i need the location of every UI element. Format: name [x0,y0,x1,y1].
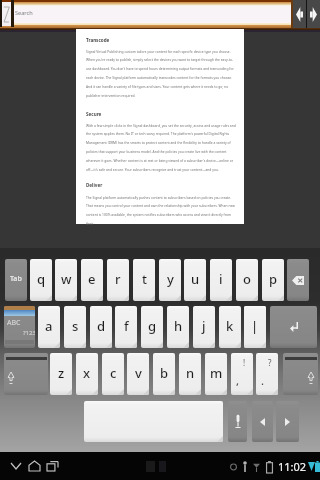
button[interactable]: j [193,306,215,348]
button[interactable]: Home [24,455,44,477]
button[interactable]: Forward [307,0,320,28]
staticText: a [45,317,53,335]
staticText: k [226,317,234,335]
button[interactable]: Hide keyboard [6,455,26,477]
staticText: d [97,317,106,335]
button[interactable]: o [236,259,258,301]
button[interactable]: r [107,259,129,301]
button[interactable] [283,353,318,395]
staticText: h [174,317,183,335]
button[interactable]: u [184,259,206,301]
staticText: | [251,317,259,335]
button[interactable]: k [219,306,241,348]
staticText: f [124,317,129,335]
button[interactable]: l [244,306,266,348]
staticText: Secure [86,111,102,117]
staticText: With a few simple clicks in the Signal d… [86,123,237,172]
staticText: b [160,364,169,382]
staticText: Transcode [86,37,110,43]
button[interactable] [228,401,247,442]
staticText: e [88,270,96,288]
staticText: ! [243,357,246,368]
staticText: j [202,317,206,335]
staticText: . [261,373,264,388]
staticText: Deliver [86,182,103,188]
staticText: m [210,364,223,382]
staticText: s [72,317,79,335]
button[interactable]: a [38,306,60,348]
button[interactable]: v [127,353,149,395]
button[interactable]: m [205,353,227,395]
staticText: x [83,364,91,382]
staticText: , [236,373,240,388]
button[interactable]: h [167,306,189,348]
button[interactable]: | [244,306,266,348]
button[interactable] [84,401,223,442]
button[interactable]: ! [231,353,253,395]
staticText: t [142,270,147,288]
button[interactable] [287,259,309,301]
staticText: o [243,270,251,288]
button[interactable]: b [153,353,175,395]
button[interactable]: q [30,259,52,301]
button[interactable]: Tab [5,259,27,301]
button[interactable]: d [90,306,112,348]
button[interactable]: Back [293,0,306,28]
button[interactable]: Search [2,2,11,26]
staticText: y [167,270,174,288]
button[interactable]: i [210,259,232,301]
staticText: Tab [10,274,22,284]
staticText: Signal Virtual Publishing custom tailors… [86,49,237,98]
button[interactable] [270,306,317,348]
button[interactable]: Transcode [76,29,244,224]
staticText: c [110,364,117,382]
button[interactable]: Recent apps [42,455,62,477]
staticText: i [219,270,223,288]
staticText: g [148,317,157,335]
staticText: p [269,270,278,288]
staticText: 11:02 [278,459,307,474]
button[interactable]: p [262,259,284,301]
staticText: ? [268,357,272,368]
button[interactable]: z [50,353,72,395]
button[interactable]: ? [256,353,278,395]
staticText: The Signal platform automatically pushes… [86,195,237,226]
staticText: q [37,270,46,288]
staticText: Search [15,9,33,17]
button[interactable]: n [179,353,201,395]
staticText: n [186,364,195,382]
button[interactable]: f [115,306,137,348]
button[interactable] [252,401,273,442]
staticText: ?123 [23,329,35,337]
staticText: v [135,364,142,382]
button[interactable]: ABC [4,306,35,348]
button[interactable]: y [159,259,181,301]
staticText: ABC [7,318,21,328]
button[interactable]: e [81,259,103,301]
staticText: r [115,270,121,288]
button[interactable]: t [133,259,155,301]
button[interactable]: s [64,306,86,348]
staticText: u [191,270,200,288]
button[interactable]: g [141,306,163,348]
button[interactable] [276,401,299,442]
button[interactable]: x [76,353,98,395]
staticText: l [253,317,257,335]
button[interactable]: w [55,259,77,301]
button[interactable] [4,353,48,395]
staticText: z [58,364,65,382]
staticText: w [61,270,72,288]
button[interactable]: c [102,353,124,395]
